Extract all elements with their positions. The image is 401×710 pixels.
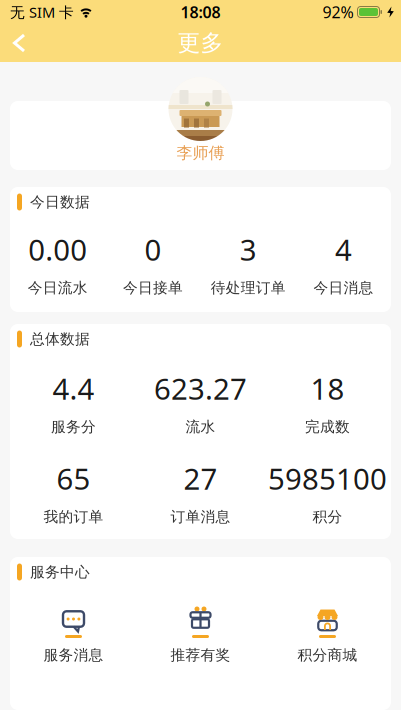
button[interactable]: 服务消息 bbox=[10, 599, 137, 664]
button[interactable]: 积分商城 bbox=[264, 599, 391, 664]
button[interactable]: 0.00 bbox=[10, 230, 105, 297]
staticText: 积分 bbox=[312, 508, 342, 526]
staticText: 服务中心 bbox=[30, 563, 90, 581]
staticText: 待处理订单 bbox=[211, 279, 286, 297]
button[interactable]: 65 bbox=[10, 459, 137, 526]
button[interactable]: 4.4 bbox=[10, 369, 137, 436]
staticText: 完成数 bbox=[305, 418, 350, 436]
button[interactable]: 推荐有奖 bbox=[137, 599, 264, 664]
staticText: 服务消息 bbox=[43, 646, 103, 664]
staticText: 总体数据 bbox=[30, 330, 90, 348]
staticText: 18:08 bbox=[180, 1, 220, 23]
staticText: 更多 bbox=[177, 29, 223, 57]
button[interactable]: 623.27 bbox=[137, 369, 264, 436]
staticText: 我的订单 bbox=[43, 508, 103, 526]
staticText: 流水 bbox=[185, 418, 215, 436]
staticText: 无 SIM 卡 bbox=[10, 2, 74, 22]
staticText: 今日数据 bbox=[30, 193, 90, 211]
button[interactable]: 27 bbox=[137, 459, 264, 526]
staticText: 623.27 bbox=[154, 369, 247, 408]
staticText: 3 bbox=[240, 230, 257, 269]
staticText: 4 bbox=[335, 230, 352, 269]
staticText: 推荐有奖 bbox=[170, 646, 230, 664]
staticText: 0 bbox=[144, 230, 161, 269]
staticText: 27 bbox=[183, 459, 217, 498]
button[interactable]: 3 bbox=[200, 230, 296, 297]
button[interactable] bbox=[0, 33, 27, 53]
staticText: 5985100 bbox=[268, 459, 387, 498]
staticText: 积分商城 bbox=[297, 646, 357, 664]
staticText: 今日流水 bbox=[28, 279, 88, 297]
staticText: 今日接单 bbox=[123, 279, 183, 297]
staticText: 18 bbox=[310, 369, 344, 408]
button[interactable]: 5985100 bbox=[264, 459, 391, 526]
staticText: 服务分 bbox=[51, 418, 96, 436]
button[interactable]: 0 bbox=[105, 230, 200, 297]
button[interactable]: 李师傅 bbox=[10, 101, 391, 170]
staticText: 92% bbox=[322, 1, 353, 23]
staticText: 李师傅 bbox=[176, 143, 224, 163]
button[interactable]: 4 bbox=[296, 230, 391, 297]
staticText: 订单消息 bbox=[170, 508, 230, 526]
button[interactable]: 18 bbox=[264, 369, 391, 436]
staticText: 65 bbox=[56, 459, 90, 498]
staticText: 4.4 bbox=[52, 369, 94, 408]
staticText: 0.00 bbox=[28, 230, 87, 269]
staticText: 今日消息 bbox=[313, 279, 373, 297]
